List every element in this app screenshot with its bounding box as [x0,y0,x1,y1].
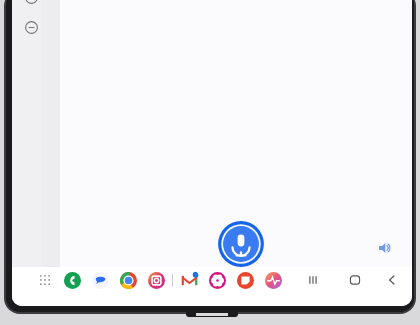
button[interactable]: Collapse panel [20,0,42,8]
button[interactable]: Home [344,269,366,291]
button[interactable]: Voice input [215,218,267,270]
button[interactable]: Apps [34,269,56,291]
button[interactable]: Phone [61,269,83,291]
button[interactable]: Photos app [206,269,228,291]
button[interactable]: Messages [89,269,111,291]
button[interactable]: Notes [234,269,256,291]
button[interactable]: Back [386,269,398,291]
button[interactable]: Sound output [373,236,397,260]
button[interactable]: Instagram [145,269,167,291]
button[interactable]: Recent apps [302,269,324,291]
button[interactable]: Chrome [117,269,139,291]
button[interactable]: Health [262,269,284,291]
button[interactable]: Minimise panel [20,16,42,38]
button[interactable]: Gmail [178,269,200,291]
